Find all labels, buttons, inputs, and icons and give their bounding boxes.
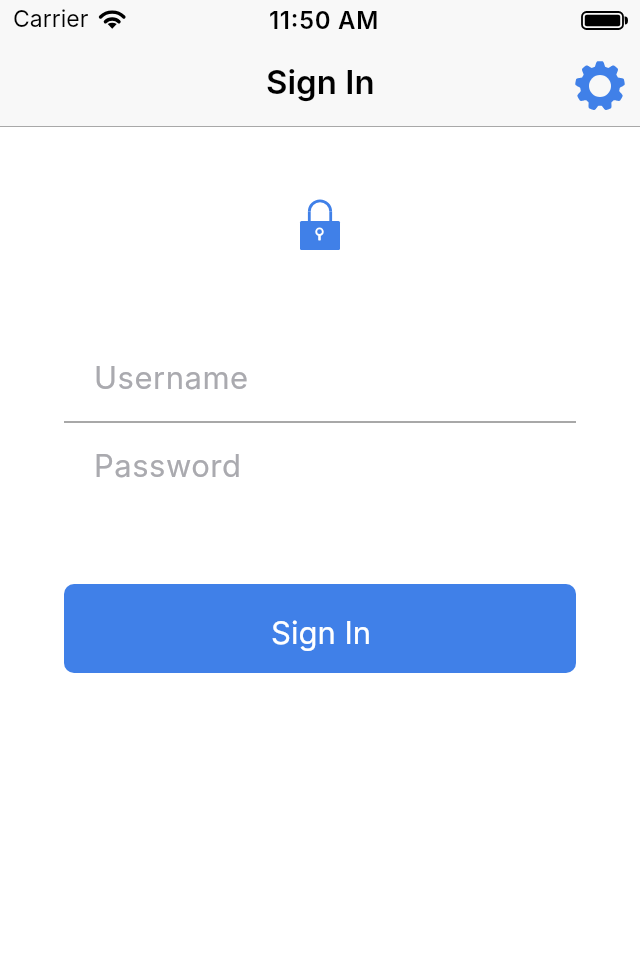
staticText: Username bbox=[94, 359, 249, 397]
button[interactable]: Username bbox=[64, 350, 576, 422]
staticText: Sign In bbox=[266, 62, 375, 102]
button[interactable]: Password bbox=[64, 440, 576, 510]
staticText: Sign In bbox=[271, 614, 372, 652]
staticText: Password bbox=[94, 447, 242, 485]
button[interactable]: Sign In bbox=[64, 584, 576, 673]
staticText: Carrier bbox=[13, 5, 89, 33]
staticText: 11:50 AM bbox=[269, 6, 380, 35]
button[interactable] bbox=[572, 58, 628, 114]
